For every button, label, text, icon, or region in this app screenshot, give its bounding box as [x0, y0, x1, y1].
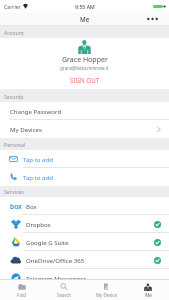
button[interactable]: Me: [127, 280, 169, 300]
staticText: box: [10, 202, 22, 211]
staticText: Tap to add: [23, 173, 54, 181]
button[interactable]: Tap to add: [0, 168, 169, 186]
staticText: Dropbox: [26, 220, 51, 228]
button[interactable]: My Devices: [0, 120, 169, 138]
button[interactable]: More options: [135, 13, 169, 26]
staticText: Personal: [4, 141, 26, 148]
staticText: My Devices: [10, 125, 42, 133]
button[interactable]: OneDrive/Office 365: [0, 251, 169, 269]
button[interactable]: Tap to add: [0, 150, 169, 168]
staticText: Box: [26, 202, 37, 210]
button[interactable]: Search: [43, 280, 85, 300]
staticText: Telegram Messenger: [26, 274, 86, 282]
staticText: SIGN OUT: [70, 76, 100, 84]
staticText: Grace Hopper: [62, 55, 108, 65]
staticText: grace@beta.minnow.it: [60, 65, 109, 71]
button[interactable]: Telegram Messenger: [0, 269, 169, 287]
staticText: Security: [4, 93, 24, 100]
staticText: Google G Suite: [26, 238, 69, 246]
button[interactable]: Google G Suite: [0, 233, 169, 251]
staticText: Account: [4, 29, 24, 36]
button[interactable]: box: [0, 197, 169, 215]
button[interactable]: Change Password: [0, 102, 169, 120]
staticText: Me: [145, 292, 152, 298]
button[interactable]: My Device: [85, 280, 127, 300]
staticText: My Device: [96, 292, 117, 298]
staticText: Services: [4, 188, 24, 195]
button[interactable]: Dropbox: [0, 215, 169, 233]
button[interactable]: SIGN OUT: [0, 71, 169, 89]
staticText: Change Password: [10, 107, 62, 115]
staticText: Search: [57, 292, 71, 298]
button[interactable]: Fold: [0, 280, 43, 300]
staticText: Carrier: [4, 3, 21, 10]
staticText: OneDrive/Office 365: [26, 256, 85, 264]
staticText: 9:55 AM: [75, 3, 95, 10]
staticText: Fold: [17, 292, 26, 298]
staticText: Me: [80, 15, 90, 23]
staticText: Tap to add: [23, 155, 54, 163]
